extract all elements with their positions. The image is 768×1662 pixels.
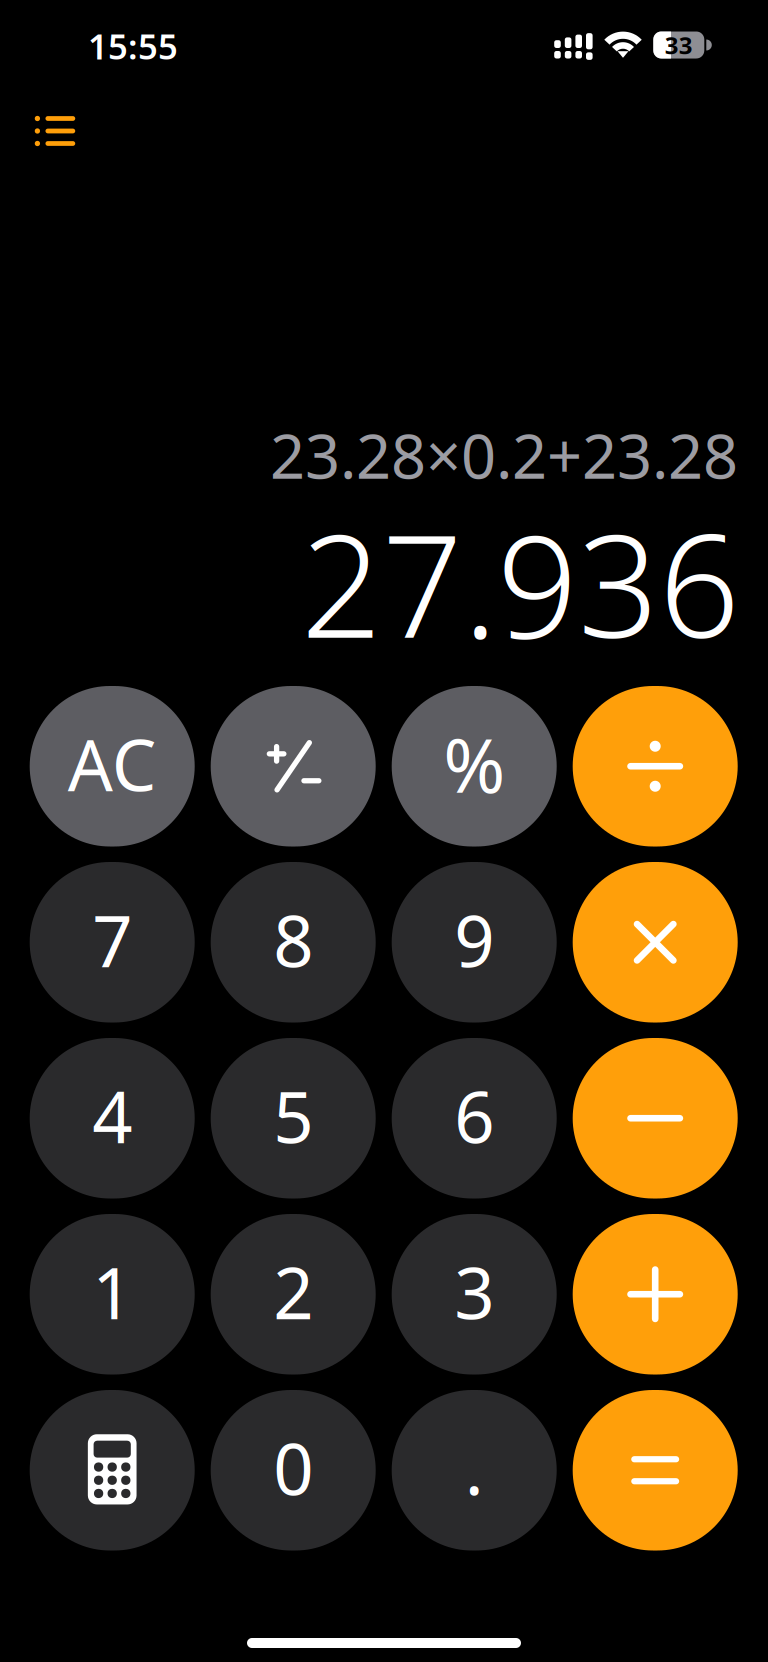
button[interactable]: 7 [30,862,195,1022]
staticText: 4 [92,1069,132,1163]
staticText: . [465,1421,484,1515]
button[interactable]: Equals [573,1390,738,1550]
staticText: 23.28×0.2+23.28 [270,414,738,496]
button[interactable]: 0 [211,1390,376,1550]
staticText: 3 [454,1245,494,1339]
button[interactable]: 1 [30,1214,195,1374]
button[interactable]: Plus Minus [211,686,376,846]
staticText: 6 [454,1069,494,1163]
button[interactable]: 2 [211,1214,376,1374]
staticText: 33 [665,29,693,61]
button[interactable]: Minus [573,1038,738,1198]
button[interactable]: 4 [30,1038,195,1198]
button[interactable]: Calculator [30,1390,195,1550]
staticText: AC [68,717,157,811]
staticText: 0 [273,1421,313,1515]
button[interactable]: AC [30,686,195,846]
button[interactable]: Multiply [573,862,738,1022]
button[interactable]: % [392,686,557,846]
staticText: 15:55 [88,23,178,69]
button[interactable]: Divide [573,686,738,846]
button[interactable]: 9 [392,862,557,1022]
button[interactable]: History [18,98,92,164]
staticText: 5 [273,1069,313,1163]
staticText: 1 [92,1245,132,1339]
button[interactable]: 3 [392,1214,557,1374]
staticText: % [443,714,505,813]
button[interactable]: Plus [573,1214,738,1374]
staticText: 8 [273,893,313,987]
staticText: 27.936 [301,489,740,677]
button[interactable]: 6 [392,1038,557,1198]
staticText: 9 [454,893,494,987]
button[interactable]: 8 [211,862,376,1022]
staticText: 2 [273,1245,313,1339]
staticText: 7 [92,893,132,987]
button[interactable]: . [392,1390,557,1550]
button[interactable]: 5 [211,1038,376,1198]
